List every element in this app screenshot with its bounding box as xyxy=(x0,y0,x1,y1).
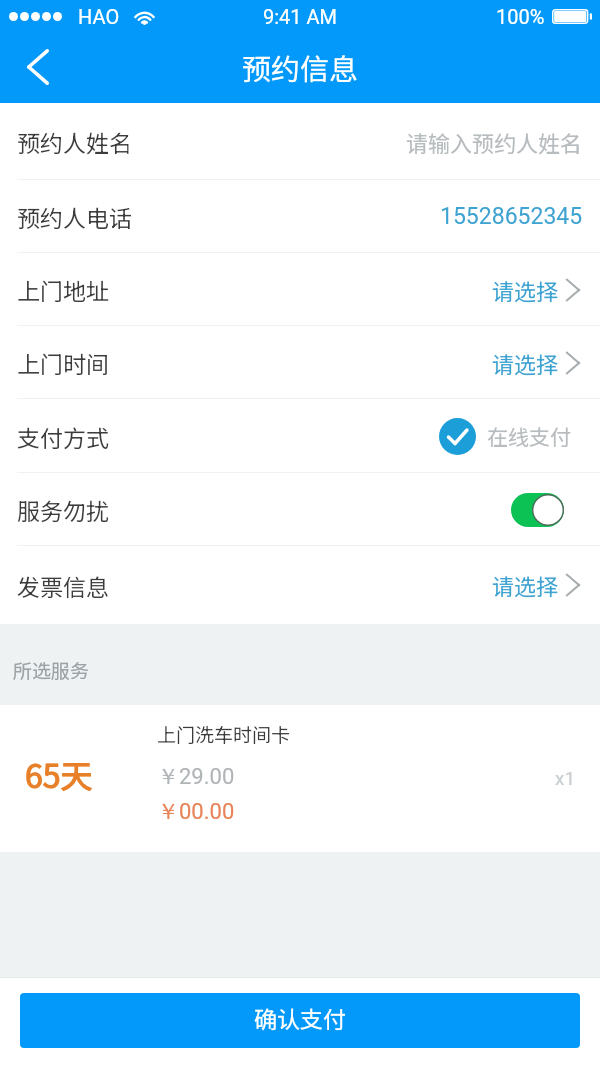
staticText: HAO xyxy=(78,5,120,28)
button[interactable]: 服务勿扰 xyxy=(0,473,600,546)
staticText: 上门地址 xyxy=(17,273,109,306)
staticText: 在线支付 xyxy=(487,421,571,451)
button[interactable]: 65天 xyxy=(0,705,600,852)
button[interactable]: 上门地址 xyxy=(0,253,600,326)
staticText: 服务勿扰 xyxy=(17,493,109,526)
staticText: ￥00.00 xyxy=(157,798,235,826)
staticText: 确认支付 xyxy=(254,1001,346,1034)
staticText: 预约人电话 xyxy=(17,200,132,233)
staticText: 请选择 xyxy=(492,569,559,601)
staticText: 所选服务 xyxy=(13,656,90,684)
staticText: 预约信息 xyxy=(242,46,359,88)
staticText: 100% xyxy=(496,5,545,28)
staticText: 支付方式 xyxy=(17,420,109,453)
button[interactable]: Service do not disturb toggle xyxy=(511,493,564,527)
button[interactable]: 预约人电话 xyxy=(0,180,600,253)
button[interactable]: 支付方式 xyxy=(0,399,600,473)
staticText: ￥29.00 xyxy=(157,763,235,791)
staticText: 请选择 xyxy=(492,274,559,306)
button[interactable]: 预约人姓名 xyxy=(0,103,600,180)
staticText: 65天 xyxy=(25,751,93,797)
button[interactable]: 发票信息 xyxy=(0,546,600,624)
staticText: 请选择 xyxy=(492,347,559,379)
staticText: 预约人姓名 xyxy=(17,125,132,158)
staticText: 上门时间 xyxy=(17,346,109,379)
staticText: 9:41 AM xyxy=(263,5,338,28)
staticText: 上门洗车时间卡 xyxy=(157,720,291,748)
staticText: 请输入预约人姓名 xyxy=(406,126,583,158)
staticText: x1 xyxy=(555,767,576,789)
button[interactable]: 上门时间 xyxy=(0,326,600,399)
staticText: 发票信息 xyxy=(17,569,109,602)
button[interactable]: 确认支付 xyxy=(20,993,580,1048)
staticText: 15528652345 xyxy=(440,203,583,230)
button[interactable]: Back xyxy=(0,39,76,95)
